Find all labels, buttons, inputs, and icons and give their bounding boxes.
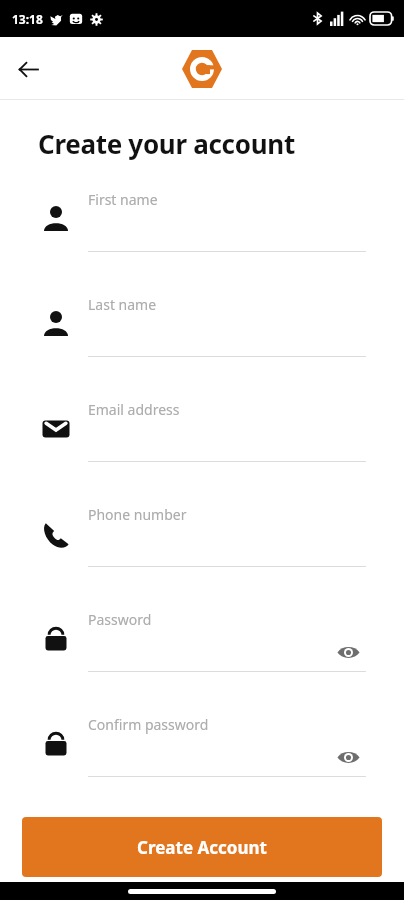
- staticText: Create Account: [137, 836, 267, 859]
- staticText: Last name: [88, 295, 157, 314]
- button[interactable]: Create Account: [22, 817, 382, 877]
- button[interactable]: Back: [8, 49, 48, 89]
- button[interactable]: Password: [0, 600, 404, 705]
- button[interactable]: Show password: [332, 741, 364, 773]
- staticText: Phone number: [88, 505, 187, 524]
- button[interactable]: Last name: [0, 285, 404, 390]
- staticText: Confirm password: [88, 715, 209, 734]
- button[interactable]: Show password: [332, 636, 364, 668]
- button[interactable]: Email address: [0, 390, 404, 495]
- staticText: 13:18: [12, 11, 43, 27]
- button[interactable]: First name: [0, 180, 404, 285]
- staticText: Password: [88, 610, 152, 629]
- staticText: Create your account: [38, 126, 295, 161]
- button[interactable]: Phone number: [0, 495, 404, 600]
- staticText: Email address: [88, 400, 180, 419]
- button[interactable]: Confirm password: [0, 705, 404, 810]
- staticText: First name: [88, 190, 158, 209]
